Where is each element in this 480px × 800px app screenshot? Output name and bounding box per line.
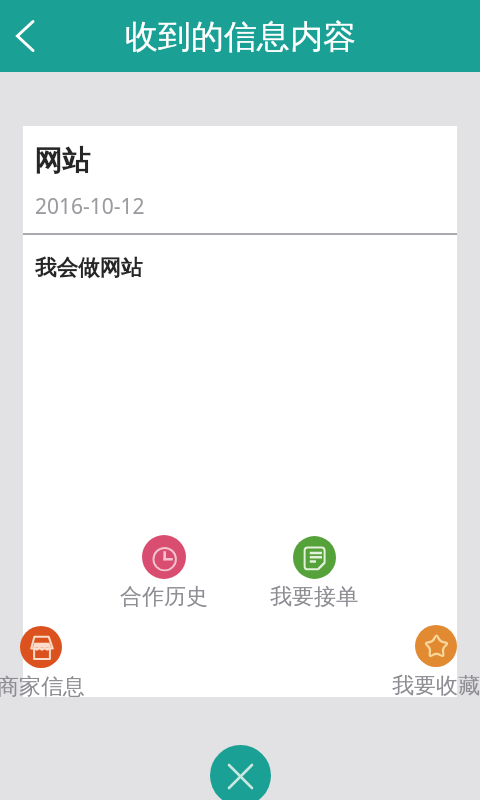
button[interactable]: Close [210, 745, 271, 800]
staticText: 我要接单 [259, 583, 369, 611]
staticText: 2016-10-12 [35, 192, 145, 221]
staticText: 商家信息 [0, 673, 96, 701]
staticText: 我要收藏 [381, 672, 480, 700]
button[interactable]: 我要收藏 [381, 620, 480, 701]
staticText: 收到的信息内容 [125, 16, 356, 58]
button[interactable]: Back [0, 0, 50, 72]
staticText: 我会做网站 [35, 254, 143, 281]
button[interactable]: 合作历史 [109, 530, 219, 612]
staticText: 合作历史 [109, 583, 219, 611]
button[interactable]: 我要接单 [259, 531, 369, 612]
button[interactable]: 商家信息 [0, 621, 96, 702]
staticText: 网站 [34, 143, 90, 178]
